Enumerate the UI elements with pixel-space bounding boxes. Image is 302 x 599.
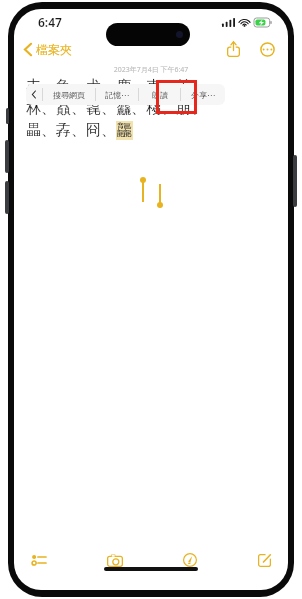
- staticText: 分享⋯: [191, 90, 215, 100]
- button[interactable]: Share: [224, 38, 243, 60]
- button[interactable]: More options: [257, 39, 278, 60]
- button[interactable]: Checklist: [26, 549, 51, 571]
- staticText: 丰、魚、犬、鹿、束、羊、: [26, 77, 206, 96]
- staticText: 搜尋網頁: [53, 90, 85, 100]
- button[interactable]: 搜尋網頁: [43, 84, 95, 105]
- staticText: 朗讀: [152, 90, 168, 100]
- button[interactable]: Markup: [178, 548, 202, 572]
- staticText: 龘: [117, 121, 132, 140]
- button[interactable]: 朗讀: [139, 84, 180, 105]
- staticText: 6:47: [38, 14, 62, 30]
- staticText: 檔案夾: [36, 42, 72, 57]
- button[interactable]: 分享⋯: [181, 84, 225, 105]
- button[interactable]: Previous: [26, 84, 42, 105]
- staticText: 記憶⋯: [105, 90, 129, 100]
- button[interactable]: Camera: [102, 549, 128, 572]
- button[interactable]: 記憶⋯: [96, 84, 138, 105]
- button[interactable]: 檔案夾: [14, 38, 80, 61]
- staticText: 畾、孨、冏、: [26, 121, 116, 140]
- button[interactable]: New note: [253, 549, 276, 572]
- staticText: 2023年7月4日 下午6:47: [14, 65, 288, 75]
- staticText: 林、贔、毳、麤、䅳、朋、: [26, 99, 206, 118]
